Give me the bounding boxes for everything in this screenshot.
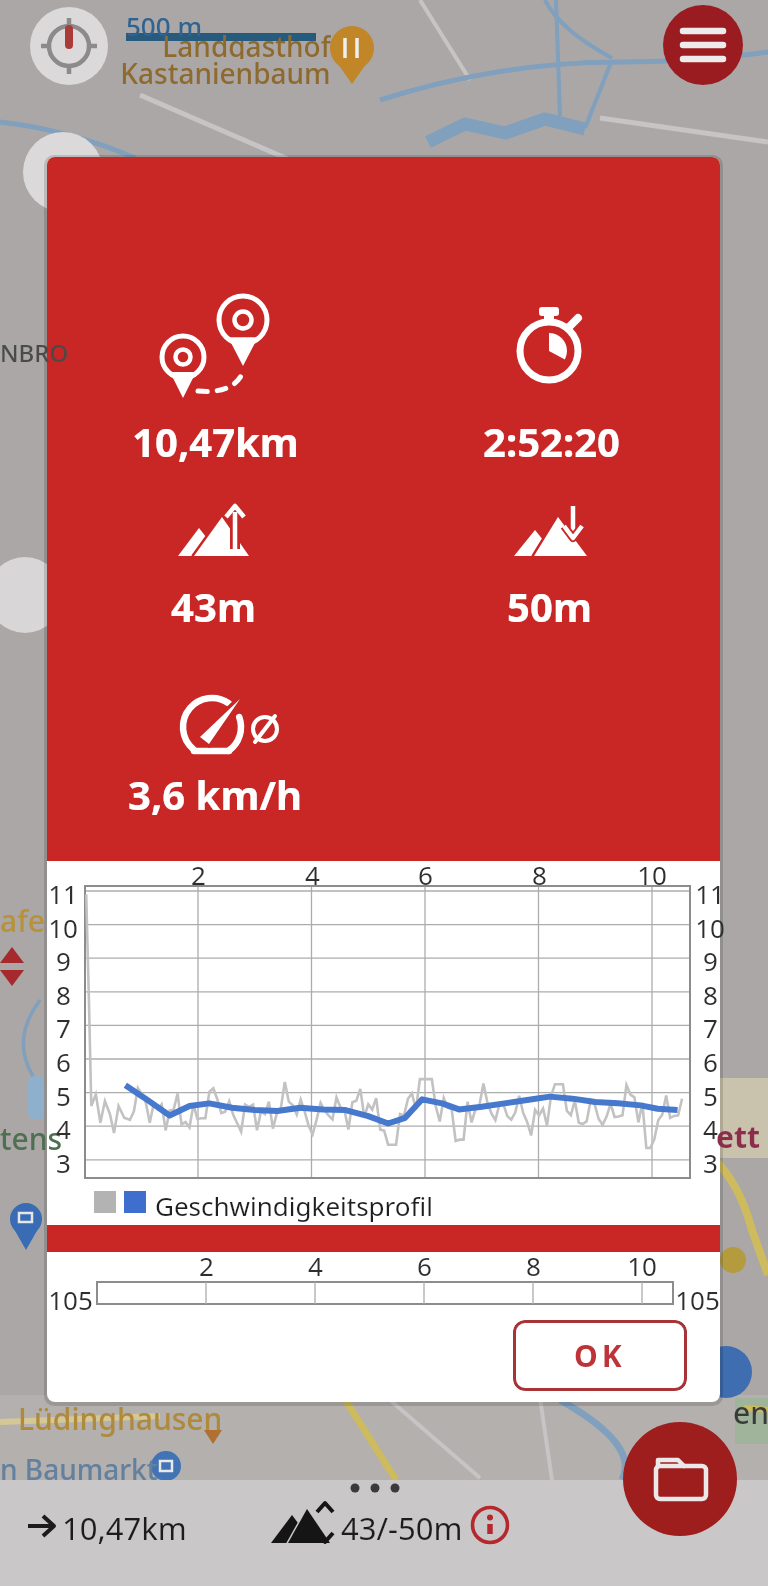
staticText: 6 bbox=[56, 1044, 71, 1074]
staticText: 43/-50m bbox=[341, 1507, 463, 1549]
staticText: 5 bbox=[703, 1078, 718, 1108]
staticText: 6 bbox=[703, 1044, 718, 1074]
staticText: 5 bbox=[56, 1078, 71, 1108]
staticText: 4 bbox=[56, 1111, 71, 1141]
button[interactable] bbox=[30, 7, 108, 85]
staticText: 10 bbox=[695, 910, 725, 940]
staticText: 3 bbox=[56, 1145, 71, 1175]
staticText: 4 bbox=[703, 1111, 718, 1141]
staticText: en bbox=[733, 1392, 768, 1433]
staticText: 10,47km bbox=[132, 414, 299, 464]
button[interactable] bbox=[663, 5, 743, 85]
staticText: 6 bbox=[418, 857, 433, 885]
staticText: 105 bbox=[48, 1282, 93, 1310]
staticText: 3,6 km/h bbox=[128, 767, 302, 817]
button[interactable]: OK bbox=[513, 1320, 687, 1391]
staticText: 8 bbox=[56, 977, 71, 1007]
button[interactable] bbox=[470, 1505, 510, 1545]
staticText: 10 bbox=[48, 910, 78, 940]
staticText: OK bbox=[574, 1335, 626, 1376]
staticText: afe bbox=[0, 900, 46, 941]
staticText: 2 bbox=[199, 1248, 214, 1276]
staticText: 105 bbox=[675, 1282, 720, 1310]
staticText: Landgasthof bbox=[162, 27, 331, 59]
staticText: 9 bbox=[56, 943, 71, 973]
staticText: Kastanienbaum bbox=[120, 54, 331, 86]
staticText: 11 bbox=[48, 876, 78, 906]
staticText: 2:52:20 bbox=[483, 414, 620, 464]
staticText: 7 bbox=[703, 1010, 718, 1040]
staticText: 43m bbox=[171, 579, 256, 629]
staticText: 6 bbox=[417, 1248, 432, 1276]
staticText: 8 bbox=[532, 857, 547, 885]
staticText: 50m bbox=[507, 579, 592, 629]
staticText: 3 bbox=[703, 1145, 718, 1175]
staticText: 7 bbox=[56, 1010, 71, 1040]
staticText: 11 bbox=[695, 876, 725, 906]
staticText: Geschwindigkeitsprofil bbox=[155, 1188, 433, 1223]
staticText: 2 bbox=[191, 857, 206, 885]
staticText: NBRO bbox=[0, 336, 69, 369]
staticText: 500 m bbox=[126, 8, 202, 43]
staticText: Lüdinghausen bbox=[18, 1398, 223, 1439]
staticText: 10 bbox=[627, 1248, 657, 1276]
staticText: 9 bbox=[703, 943, 718, 973]
staticText: 10 bbox=[637, 857, 667, 885]
button[interactable] bbox=[623, 1422, 737, 1536]
staticText: 8 bbox=[526, 1248, 541, 1276]
staticText: 10,47km bbox=[62, 1507, 187, 1549]
staticText: 8 bbox=[703, 977, 718, 1007]
staticText: n Baumarkt bbox=[0, 1450, 158, 1488]
staticText: 4 bbox=[305, 857, 320, 885]
staticText: tens bbox=[0, 1118, 63, 1159]
staticText: 4 bbox=[308, 1248, 323, 1276]
staticText: ett bbox=[716, 1116, 760, 1157]
